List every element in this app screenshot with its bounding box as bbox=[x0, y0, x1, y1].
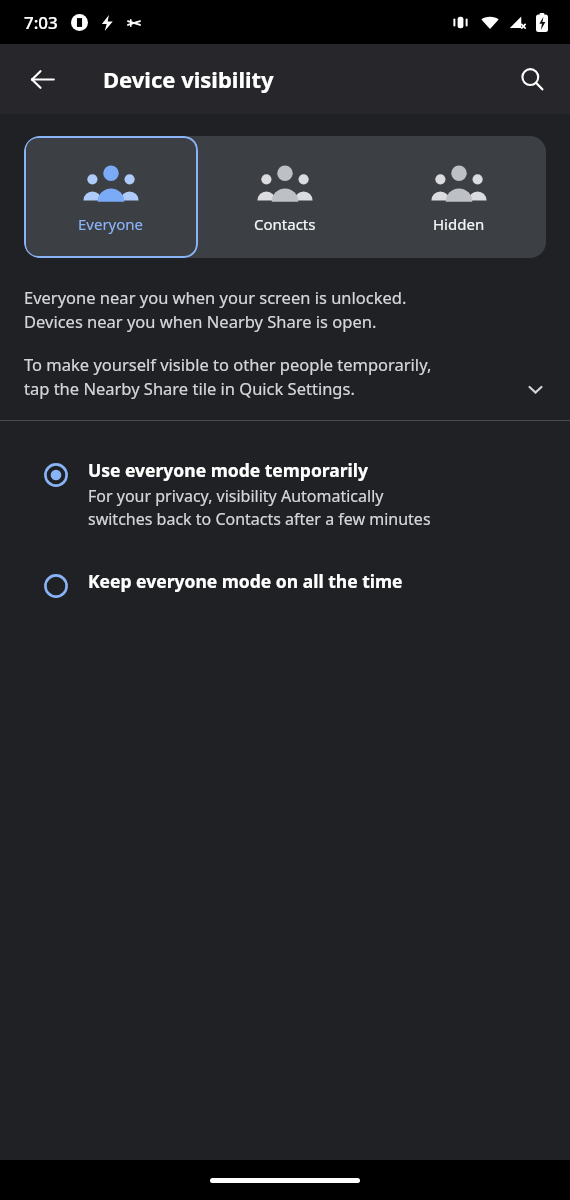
staticText: Everyone bbox=[78, 214, 144, 234]
staticText: Use everyone mode temporarily bbox=[88, 458, 369, 482]
button[interactable]: Contacts bbox=[198, 136, 372, 258]
button[interactable]: Use everyone mode temporarily bbox=[0, 449, 570, 534]
staticText: Device visibility bbox=[103, 64, 274, 94]
button[interactable]: Everyone bbox=[24, 136, 198, 258]
button[interactable]: Back bbox=[18, 55, 66, 103]
staticText: Keep everyone mode on all the time bbox=[88, 569, 403, 593]
staticText: Contacts bbox=[254, 214, 316, 234]
button[interactable]: Expand bbox=[518, 372, 552, 406]
staticText: 7:03 bbox=[24, 11, 58, 34]
button[interactable]: Hidden bbox=[372, 136, 546, 258]
button[interactable]: Search bbox=[508, 55, 556, 103]
staticText: Everyone near you when your screen is un… bbox=[24, 286, 407, 333]
staticText: To make yourself visible to other people… bbox=[24, 353, 432, 400]
staticText: For your privacy, visibility Automatical… bbox=[88, 485, 431, 530]
button[interactable]: Keep everyone mode on all the time bbox=[0, 560, 570, 612]
staticText: Hidden bbox=[433, 214, 485, 234]
